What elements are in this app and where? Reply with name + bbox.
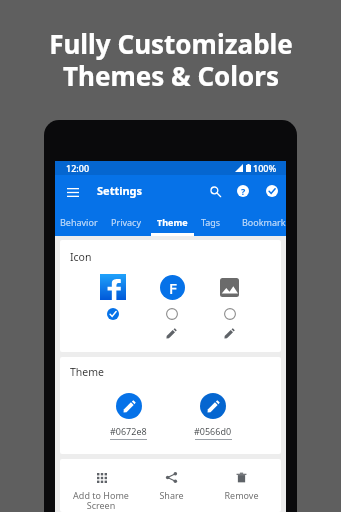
- button[interactable]: Edit: [207, 270, 253, 346]
- staticText: Behavior: [60, 216, 98, 228]
- staticText: #0672e8: [110, 425, 147, 437]
- staticText: Tags: [201, 216, 221, 228]
- button[interactable]: [90, 270, 136, 346]
- staticText: Fully Customizable Themes & Colors: [49, 26, 293, 93]
- staticText: Privacy: [111, 216, 142, 228]
- button[interactable]: Theme: [151, 208, 194, 236]
- button[interactable]: Edit: [166, 328, 177, 339]
- staticText: Settings: [97, 183, 143, 198]
- staticText: 12:00: [66, 162, 90, 174]
- staticText: Theme: [70, 365, 104, 379]
- button[interactable]: Behavior: [54, 208, 104, 236]
- staticText: #0566d0: [194, 425, 232, 437]
- staticText: Bookmark: [242, 216, 286, 228]
- staticText: Add to Home Screen: [73, 489, 129, 511]
- staticText: F: [169, 278, 177, 298]
- button[interactable]: Share: [134, 459, 208, 512]
- button[interactable]: Add to Home Screen: [64, 459, 138, 512]
- button[interactable]: Search: [204, 180, 226, 202]
- button[interactable]: Help: [232, 180, 254, 202]
- staticText: 100%: [253, 162, 277, 174]
- button[interactable]: Remove: [204, 459, 278, 512]
- button[interactable]: Tags: [196, 208, 226, 236]
- staticText: Share: [159, 489, 184, 501]
- button[interactable]: Privacy: [105, 208, 147, 236]
- button[interactable]: Edit: [224, 328, 235, 339]
- staticText: Icon: [70, 250, 92, 264]
- staticText: Remove: [224, 489, 259, 501]
- button[interactable]: Menu: [62, 181, 84, 203]
- button[interactable]: F: [149, 270, 195, 346]
- button[interactable]: #0672e8: [102, 387, 154, 445]
- button[interactable]: Done: [261, 180, 283, 202]
- button[interactable]: #0566d0: [187, 387, 239, 445]
- staticText: ?: [241, 185, 246, 197]
- button[interactable]: Bookmark: [236, 208, 292, 236]
- staticText: Theme: [157, 216, 188, 228]
